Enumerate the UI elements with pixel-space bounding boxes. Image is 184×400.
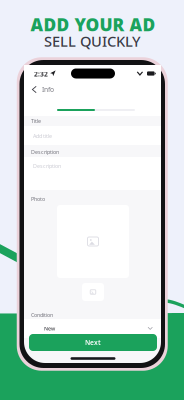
staticText: Photo (31, 195, 45, 203)
button[interactable]: Add another photo (82, 283, 104, 301)
staticText: Info (42, 85, 54, 94)
staticText: New (44, 325, 55, 332)
staticText: Add title (33, 132, 52, 140)
staticText: Next (85, 338, 101, 347)
button[interactable]: Back (28, 83, 40, 95)
staticText: 2:32 (34, 70, 48, 78)
staticText: Title (31, 117, 41, 125)
staticText: ADD YOUR AD (30, 13, 155, 36)
button[interactable]: Next (29, 334, 157, 351)
staticText: SELL QUICKLY (44, 31, 141, 51)
staticText: Condition (31, 311, 53, 319)
staticText: Description (31, 148, 59, 156)
staticText: Description (33, 162, 61, 170)
button[interactable]: New (24, 319, 161, 338)
